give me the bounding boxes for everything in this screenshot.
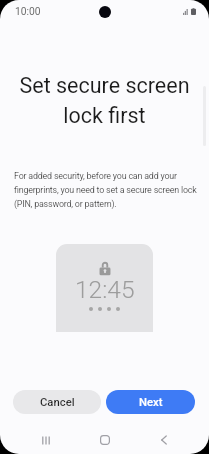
button[interactable]: Home [89,426,121,454]
button[interactable]: Back [148,426,180,454]
button[interactable]: Cancel [13,390,101,414]
staticText: Set secure screen lock first [10,73,199,128]
staticText: 12:45 [75,275,135,304]
staticText: For added security, before you can add y… [14,171,207,209]
button[interactable]: Next [106,390,195,414]
button[interactable]: Recent apps [30,426,62,454]
staticText: 10:00 [15,5,41,17]
staticText: Cancel [40,396,75,409]
staticText: Next [139,396,163,409]
